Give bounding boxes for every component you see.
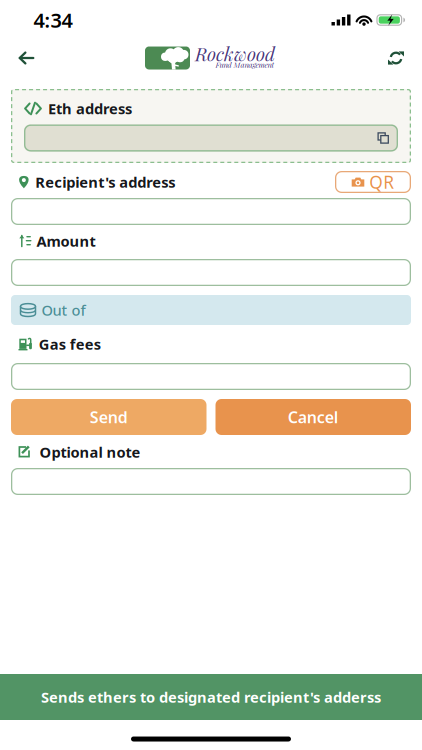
staticText: Amount — [36, 231, 95, 251]
button[interactable]: QR — [335, 171, 411, 193]
staticText: Eth address — [48, 99, 132, 118]
button[interactable]: Copy address — [24, 124, 398, 151]
staticText: Sends ethers to designated recipient's a… — [41, 687, 381, 707]
staticText: Optional note — [39, 442, 140, 462]
staticText: Fund Management — [215, 59, 274, 70]
staticText: Recipient's address — [35, 172, 175, 192]
button[interactable]: Send — [11, 399, 206, 435]
staticText: Send — [90, 406, 128, 428]
staticText: Gas fees — [39, 334, 101, 354]
staticText: Cancel — [288, 406, 339, 428]
staticText: Rockwood — [195, 41, 275, 66]
button[interactable]: Refresh — [378, 41, 414, 75]
button[interactable]: Back — [8, 41, 44, 75]
staticText: 4:34 — [33, 7, 72, 33]
staticText: Out of — [41, 300, 85, 320]
staticText: QR — [369, 170, 394, 193]
button[interactable]: Cancel — [215, 399, 411, 435]
